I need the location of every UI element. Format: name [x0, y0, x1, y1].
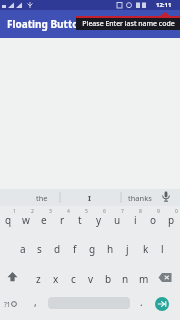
staticText: k: [143, 242, 149, 256]
button[interactable]: thanks: [123, 190, 157, 206]
staticText: 6: [103, 208, 106, 215]
button[interactable]: j: [119, 239, 136, 259]
button[interactable]: r: [53, 210, 71, 230]
staticText: u: [114, 213, 121, 227]
staticText: s: [37, 242, 42, 256]
button[interactable]: [6, 271, 19, 284]
button[interactable]: m: [135, 269, 152, 289]
staticText: t: [78, 213, 82, 227]
staticText: c: [71, 272, 76, 286]
staticText: z: [36, 272, 41, 286]
button[interactable]: o: [144, 210, 162, 230]
staticText: p: [168, 213, 175, 227]
button[interactable]: w: [17, 210, 35, 230]
button[interactable]: v: [82, 269, 99, 289]
button[interactable]: [158, 272, 173, 283]
staticText: 9: [157, 208, 160, 215]
staticText: d: [54, 242, 61, 256]
staticText: g: [89, 242, 96, 256]
button[interactable]: t: [71, 210, 89, 230]
staticText: e: [41, 213, 47, 227]
staticText: f: [73, 242, 77, 256]
button[interactable]: e: [35, 210, 53, 230]
staticText: h: [107, 242, 114, 256]
button[interactable]: p: [162, 210, 180, 230]
staticText: r: [60, 213, 65, 227]
button[interactable]: ,: [30, 295, 40, 309]
button[interactable]: h: [102, 239, 119, 259]
staticText: 5: [85, 208, 88, 215]
staticText: b: [105, 272, 112, 286]
staticText: j: [126, 242, 129, 256]
button[interactable]: s: [31, 239, 48, 259]
staticText: 2: [31, 208, 34, 215]
button[interactable]: a: [14, 239, 31, 259]
button[interactable]: q: [0, 210, 17, 230]
button[interactable]: ?1: [1, 297, 13, 311]
staticText: 7: [121, 208, 124, 215]
staticText: 12:11: [156, 1, 172, 9]
button[interactable]: y: [90, 210, 108, 230]
button[interactable]: I: [77, 190, 101, 206]
staticText: 1: [13, 208, 16, 215]
button[interactable]: z: [30, 269, 47, 289]
button[interactable]: g: [84, 239, 101, 259]
button[interactable]: b: [100, 269, 117, 289]
button[interactable]: the: [30, 190, 54, 206]
button[interactable]: i: [126, 210, 144, 230]
staticText: 8: [139, 208, 142, 215]
staticText: Floating Button: [7, 17, 86, 31]
staticText: the: [36, 193, 48, 203]
staticText: ,: [34, 295, 37, 309]
button[interactable]: l: [154, 239, 171, 259]
staticText: a: [20, 242, 26, 256]
button[interactable]: d: [49, 239, 66, 259]
button[interactable]: u: [108, 210, 126, 230]
button[interactable]: c: [65, 269, 82, 289]
staticText: x: [53, 272, 59, 286]
button[interactable]: f: [66, 239, 83, 259]
button[interactable]: .: [136, 295, 146, 309]
button[interactable]: k: [137, 239, 154, 259]
staticText: .: [140, 295, 143, 309]
staticText: 0: [175, 208, 178, 215]
staticText: n: [122, 272, 129, 286]
staticText: 3: [49, 208, 52, 215]
button[interactable]: [155, 297, 169, 311]
staticText: m: [139, 272, 149, 286]
button[interactable]: x: [47, 269, 64, 289]
staticText: l: [161, 242, 164, 256]
button[interactable]: n: [117, 269, 134, 289]
staticText: Please Enter last name code: [82, 19, 175, 29]
staticText: thanks: [128, 193, 152, 203]
staticText: w: [22, 213, 30, 227]
staticText: q: [5, 213, 12, 227]
staticText: i: [134, 213, 137, 227]
staticText: I: [88, 193, 91, 203]
staticText: 4: [67, 208, 70, 215]
staticText: y: [96, 213, 102, 227]
staticText: ?1: [4, 300, 11, 309]
staticText: v: [88, 272, 94, 286]
button[interactable]: [160, 190, 172, 204]
staticText: o: [150, 213, 157, 227]
